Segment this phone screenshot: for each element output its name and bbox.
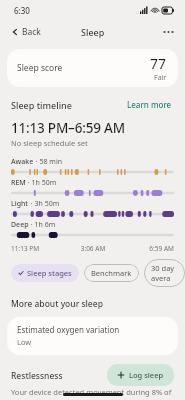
staticText: 6:59 AM (120, 244, 174, 253)
staticText: Benchmark (91, 268, 132, 278)
button[interactable]: Log sleep (107, 364, 174, 386)
staticText: · 3h 50m (29, 199, 60, 209)
button[interactable]: Sleep score (7, 49, 178, 87)
button[interactable]: 30 day avera (144, 259, 185, 287)
staticText: 77 (150, 54, 167, 73)
staticText: Back (22, 26, 41, 38)
staticText: · 1h 6m (29, 220, 56, 230)
button[interactable]: Sleep stages (11, 264, 79, 282)
staticText: · 58 min (34, 157, 63, 167)
staticText: Awake (11, 157, 34, 167)
staticText: Sleep stages (27, 268, 72, 278)
staticText: 3:06 AM (66, 244, 120, 253)
staticText: Sleep score (17, 62, 63, 74)
staticText: Fair (154, 73, 167, 83)
staticText: Learn more (127, 99, 172, 110)
button[interactable]: More options (159, 26, 178, 38)
button[interactable]: Back (7, 23, 45, 41)
staticText: · 1h 50m (26, 178, 57, 188)
button[interactable]: Learn more (125, 98, 174, 111)
staticText: Log sleep (129, 370, 164, 380)
staticText: Your device detected movement during 8% … (11, 387, 172, 397)
staticText: Light (11, 199, 29, 209)
staticText: 6:30 (14, 5, 30, 16)
staticText: Sleep timeline (11, 99, 72, 111)
button[interactable]: Benchmark (84, 264, 139, 282)
staticText: 11:13 PM–6:59 AM (11, 119, 125, 137)
staticText: More about your sleep (11, 298, 103, 310)
staticText: No sleep schedule set (11, 138, 88, 148)
staticText: REM (11, 178, 26, 188)
staticText: Restlessness (11, 370, 63, 382)
staticText: Sleep (81, 26, 105, 38)
staticText: 11:13 PM (11, 244, 66, 253)
staticText: 30 day avera (151, 263, 178, 283)
staticText: Low (17, 337, 32, 347)
staticText: Deep (11, 220, 29, 230)
button[interactable]: Estimated oxygen variation (7, 317, 178, 355)
staticText: Estimated oxygen variation (17, 324, 120, 335)
